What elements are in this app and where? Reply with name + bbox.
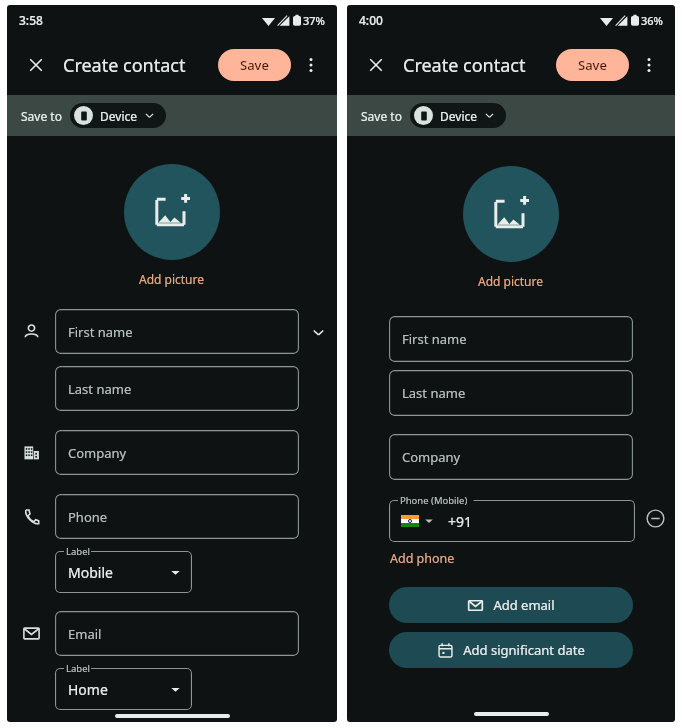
staticText: Save to (21, 108, 62, 124)
button[interactable]: Add significant date (389, 632, 633, 668)
button[interactable]: Email (55, 611, 299, 656)
button[interactable]: Expand name fields (299, 313, 337, 351)
button[interactable]: First name (55, 309, 299, 354)
staticText: Save to (361, 108, 402, 124)
other: More options (639, 55, 659, 75)
button[interactable]: Device (410, 103, 506, 128)
staticText: 36% (641, 13, 663, 28)
button[interactable]: Last name (55, 366, 299, 411)
staticText: Add email (493, 596, 555, 614)
staticText: 3:58 (19, 12, 43, 28)
button[interactable]: Phone (55, 494, 299, 539)
button[interactable]: Close (19, 48, 53, 82)
button[interactable]: +91 (389, 500, 635, 542)
staticText: 4:00 (359, 12, 383, 28)
staticText: Add picture (139, 271, 205, 287)
staticText: Phone (Mobile) (400, 494, 468, 507)
button[interactable]: Add phone (389, 548, 456, 569)
staticText: Add phone (390, 550, 455, 567)
button[interactable]: Remove phone (635, 498, 675, 538)
staticText: 37% (303, 13, 325, 28)
staticText: First name (68, 323, 133, 341)
staticText: Create contact (63, 53, 186, 78)
button[interactable]: Company (389, 434, 633, 480)
staticText: Label (66, 545, 90, 558)
button[interactable]: First name (389, 316, 633, 362)
staticText: Add picture (478, 273, 544, 289)
button[interactable]: Close (359, 48, 393, 82)
staticText: Save (578, 56, 607, 74)
staticText: First name (402, 330, 467, 348)
staticText: Last name (402, 384, 466, 402)
other: More options (301, 55, 321, 75)
staticText: Email (68, 625, 102, 643)
staticText: Phone (68, 508, 108, 526)
staticText: Last name (68, 380, 132, 398)
staticText: Device (440, 108, 478, 124)
staticText: Create contact (403, 53, 526, 78)
staticText: Device (100, 108, 138, 124)
button[interactable]: Save (218, 49, 291, 81)
staticText: Add significant date (463, 641, 585, 659)
other: Close (27, 56, 45, 74)
staticText: Company (402, 448, 461, 466)
button[interactable]: Company (55, 430, 299, 475)
staticText: Home (68, 680, 108, 699)
button[interactable]: Last name (389, 370, 633, 416)
button[interactable]: Device (70, 103, 166, 128)
staticText: Mobile (68, 563, 113, 582)
button[interactable]: Add picture (124, 164, 220, 260)
button[interactable]: Save (556, 49, 629, 81)
button[interactable]: Home (55, 668, 192, 710)
button[interactable]: Add picture (463, 166, 559, 262)
staticText: Save (240, 56, 269, 74)
other: Remove phone (646, 509, 665, 528)
staticText: +91 (448, 512, 473, 531)
button[interactable]: More options (297, 51, 325, 79)
other: Close (367, 56, 385, 74)
button[interactable]: Mobile (55, 551, 192, 593)
staticText: Label (66, 662, 90, 675)
button[interactable]: More options (635, 51, 663, 79)
button[interactable]: Add email (389, 587, 633, 623)
staticText: Company (68, 444, 127, 462)
